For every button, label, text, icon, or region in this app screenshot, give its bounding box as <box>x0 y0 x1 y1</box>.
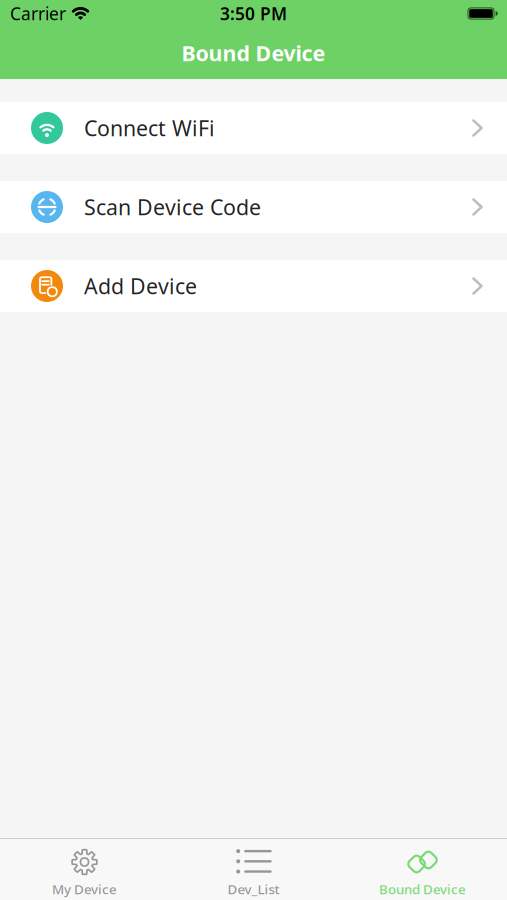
staticText: Dev_List <box>227 880 279 898</box>
button[interactable]: Connect WiFi <box>0 102 507 154</box>
button[interactable]: Scan Device Code <box>0 181 507 233</box>
button[interactable]: Add Device <box>0 260 507 312</box>
staticText: Scan Device Code <box>84 193 261 221</box>
button[interactable]: Dev_List <box>169 839 338 900</box>
staticText: Bound Device <box>379 880 466 898</box>
staticText: Add Device <box>84 272 197 300</box>
staticText: Bound Device <box>181 39 325 67</box>
button[interactable]: My Device <box>0 839 169 900</box>
staticText: My Device <box>52 880 117 898</box>
button[interactable]: Bound Device <box>338 839 507 900</box>
staticText: 3:50 PM <box>220 2 287 25</box>
staticText: Connect WiFi <box>84 114 215 142</box>
staticText: Carrier <box>10 2 66 25</box>
